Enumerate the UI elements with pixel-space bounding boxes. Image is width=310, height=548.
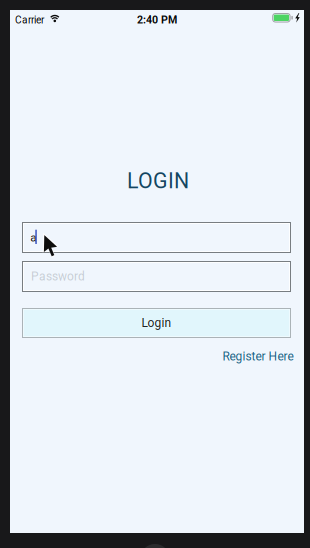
- staticText: Register Here: [222, 349, 293, 364]
- staticText: 2:40 PM: [137, 13, 177, 26]
- staticText: LOGIN: [127, 168, 189, 193]
- button[interactable]: Register Here: [24, 347, 293, 365]
- staticText: Password: [31, 269, 85, 284]
- staticText: Login: [141, 316, 171, 330]
- button[interactable]: Login: [22, 308, 291, 338]
- staticText: a: [30, 231, 36, 244]
- staticText: Carrier: [15, 14, 44, 26]
